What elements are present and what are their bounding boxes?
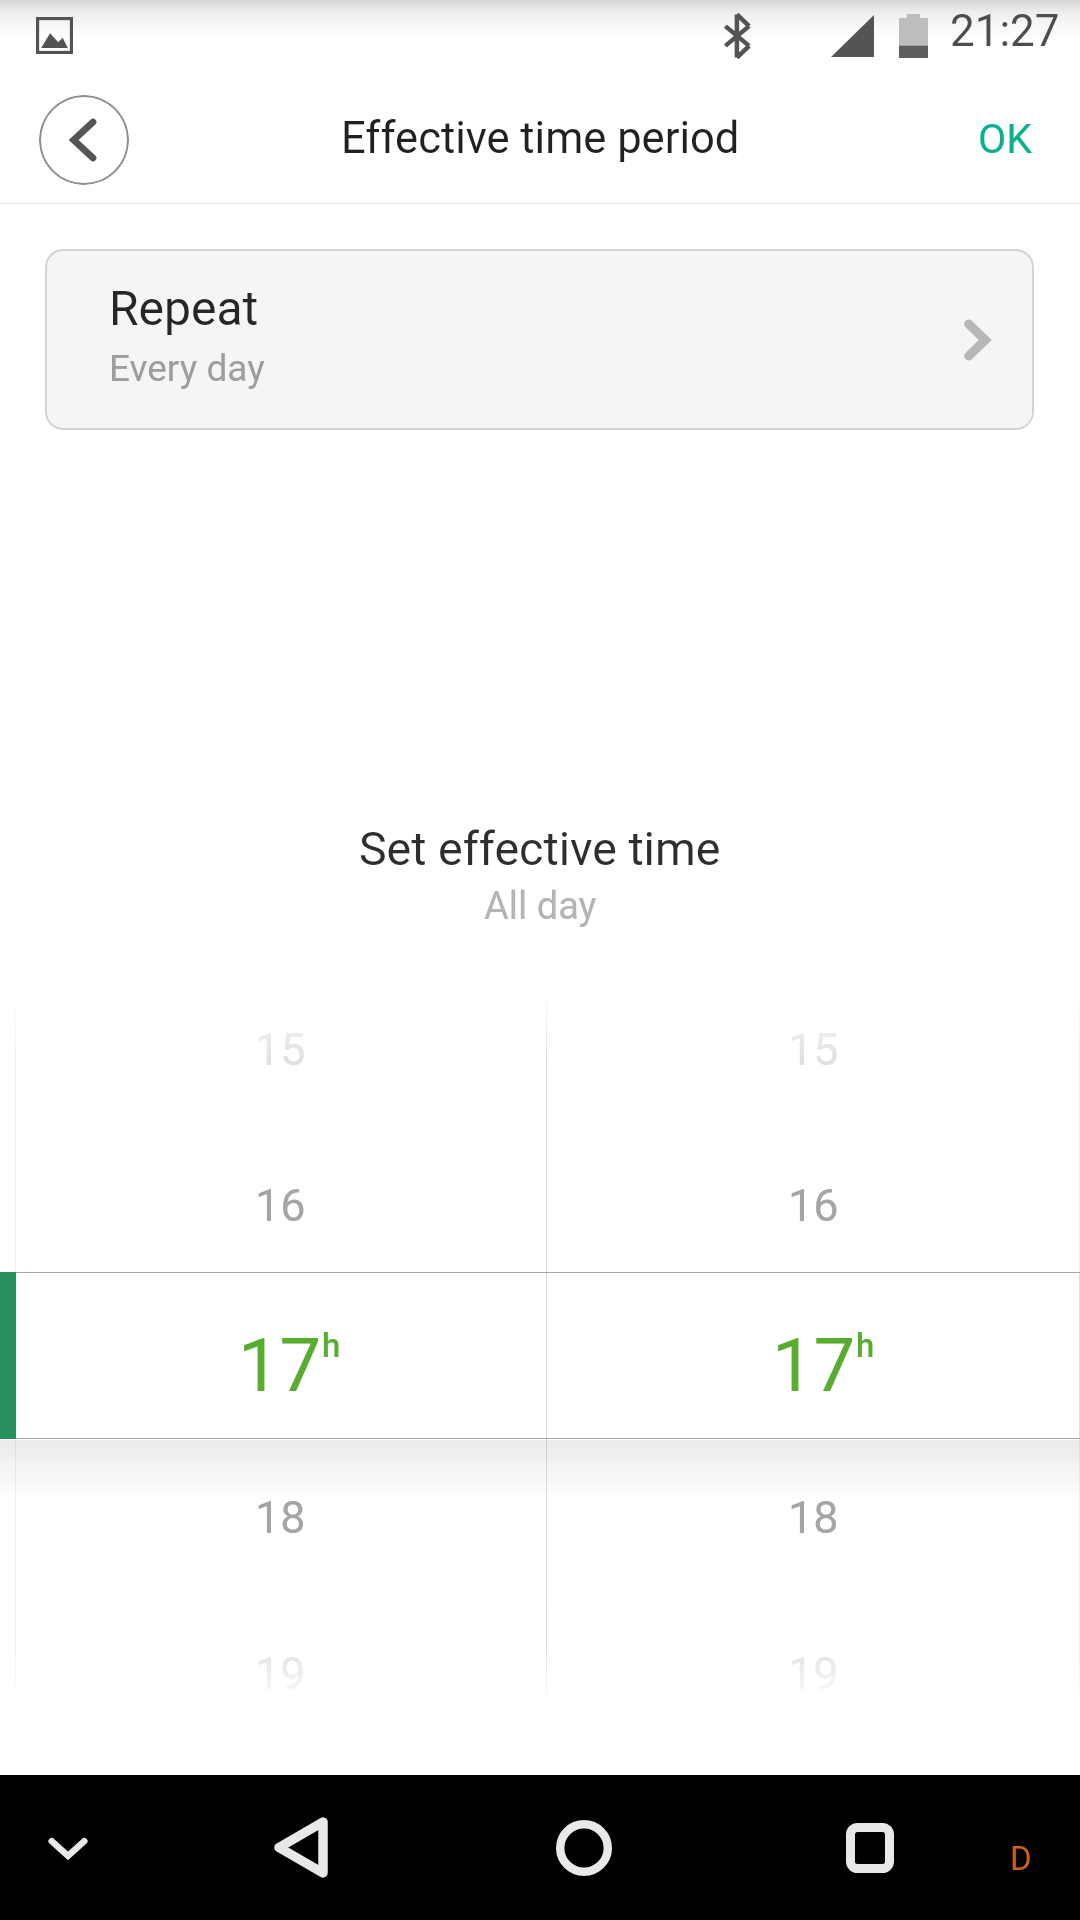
staticText: 17	[238, 1322, 322, 1409]
staticText: 19	[788, 1647, 839, 1700]
staticText: 21:27	[950, 5, 1060, 57]
staticText: D	[1010, 1839, 1032, 1878]
button[interactable]: OK	[940, 94, 1080, 186]
button[interactable]: Hide keyboard	[18, 1775, 118, 1920]
button[interactable]: Back	[39, 95, 129, 185]
staticText: 19	[255, 1647, 306, 1700]
staticText: 18	[255, 1491, 306, 1544]
staticText: Effective time period	[341, 113, 740, 164]
staticText: All day	[484, 884, 597, 929]
button[interactable]: Repeat	[45, 249, 1034, 430]
staticText: 15	[788, 1023, 839, 1076]
staticText: h	[322, 1326, 341, 1365]
staticText: Every day	[109, 347, 265, 390]
staticText: Set effective time	[359, 822, 721, 876]
staticText: 16	[255, 1179, 306, 1232]
staticText: 17	[772, 1322, 856, 1409]
staticText: 18	[788, 1491, 839, 1544]
button[interactable]: Home	[525, 1775, 645, 1920]
staticText: 16	[788, 1179, 839, 1232]
staticText: Repeat	[109, 280, 259, 336]
staticText: OK	[978, 115, 1032, 163]
button[interactable]: Recent apps	[810, 1775, 930, 1920]
button[interactable]: Developer options	[975, 1775, 1065, 1920]
staticText: 15	[255, 1023, 306, 1076]
button[interactable]: Back	[240, 1775, 360, 1920]
staticText: h	[856, 1326, 875, 1365]
